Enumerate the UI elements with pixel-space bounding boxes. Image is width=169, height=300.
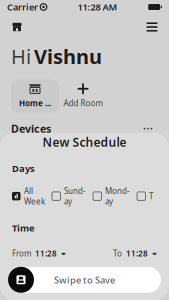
staticText: Devices (11, 122, 51, 136)
button[interactable]: All Week (12, 185, 45, 207)
button[interactable]: From (12, 248, 66, 259)
button[interactable]: Home ... (11, 80, 59, 113)
staticText: To (113, 248, 122, 259)
staticText: Vishnu (34, 43, 102, 70)
staticText: Hi (11, 43, 31, 70)
staticText: 11:28 AM (78, 1, 118, 13)
button[interactable]: Menu (142, 18, 162, 36)
staticText: Sunday (64, 185, 86, 207)
staticText: All Week (24, 185, 45, 207)
button[interactable]: More options (138, 123, 158, 135)
button[interactable]: Add Room (59, 80, 107, 113)
staticText: Days (12, 162, 35, 174)
staticText: From (12, 248, 31, 259)
staticText: T (149, 191, 153, 201)
button[interactable]: Monday (93, 185, 130, 207)
staticText: 11:28 (126, 248, 148, 259)
staticText: Home ... (19, 98, 51, 108)
staticText: 11:28 (35, 248, 57, 259)
button[interactable]: To (113, 248, 157, 259)
staticText: Carrier (7, 1, 38, 13)
button[interactable]: Swipe to Save (8, 267, 161, 293)
staticText: Add Room (63, 98, 102, 108)
staticText: Swipe to Save (54, 274, 115, 286)
staticText: Time (12, 222, 35, 234)
button[interactable]: T (137, 191, 153, 201)
button[interactable]: Home (7, 18, 27, 36)
staticText: Schedule (11, 143, 59, 157)
staticText: Monday (105, 185, 130, 207)
button[interactable]: Sunday (52, 185, 86, 207)
staticText: New Schedule (42, 134, 126, 150)
